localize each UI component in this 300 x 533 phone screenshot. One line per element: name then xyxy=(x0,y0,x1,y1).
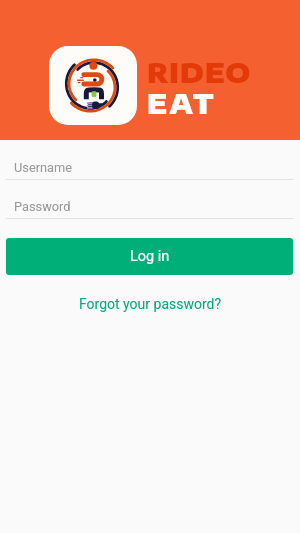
button[interactable]: Forgot your password? xyxy=(79,296,222,312)
staticText: EAT xyxy=(147,86,216,120)
staticText: RIDEO xyxy=(147,55,252,89)
staticText: Log in xyxy=(130,248,170,265)
button[interactable]: Log in xyxy=(6,238,293,275)
staticText: Username xyxy=(14,160,73,175)
staticText: Password xyxy=(14,199,71,214)
